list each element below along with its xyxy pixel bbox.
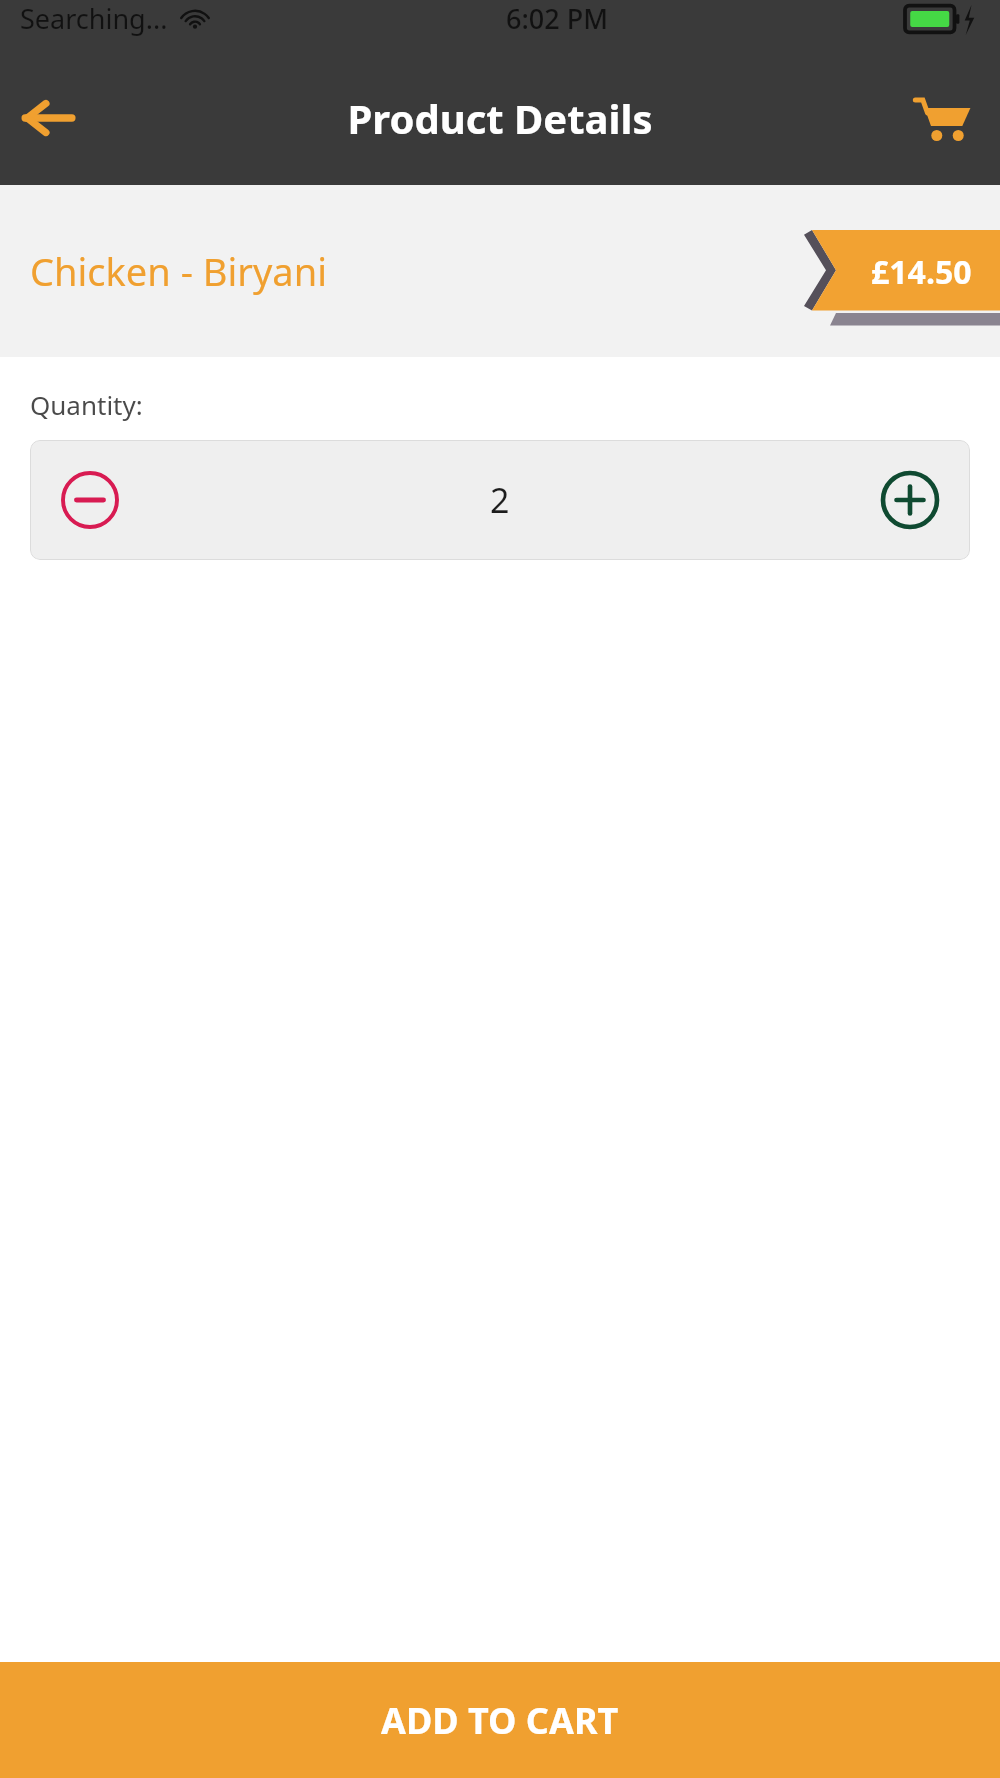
button[interactable]: Back [8,78,88,158]
staticText: Searching... [20,0,168,37]
staticText: 2 [490,477,510,523]
staticText: £14.50 [871,250,972,294]
button[interactable]: Decrease quantity [52,462,128,538]
button[interactable]: Cart [902,78,982,158]
staticText: Quantity: [30,387,143,422]
staticText: Product Details [347,91,653,145]
staticText: ADD TO CART [381,1696,619,1745]
button[interactable]: ADD TO CART [0,1662,1000,1778]
button[interactable]: Increase quantity [872,462,948,538]
staticText: Chicken - Biryani [30,245,327,297]
staticText: 6:02 PM [506,0,608,37]
